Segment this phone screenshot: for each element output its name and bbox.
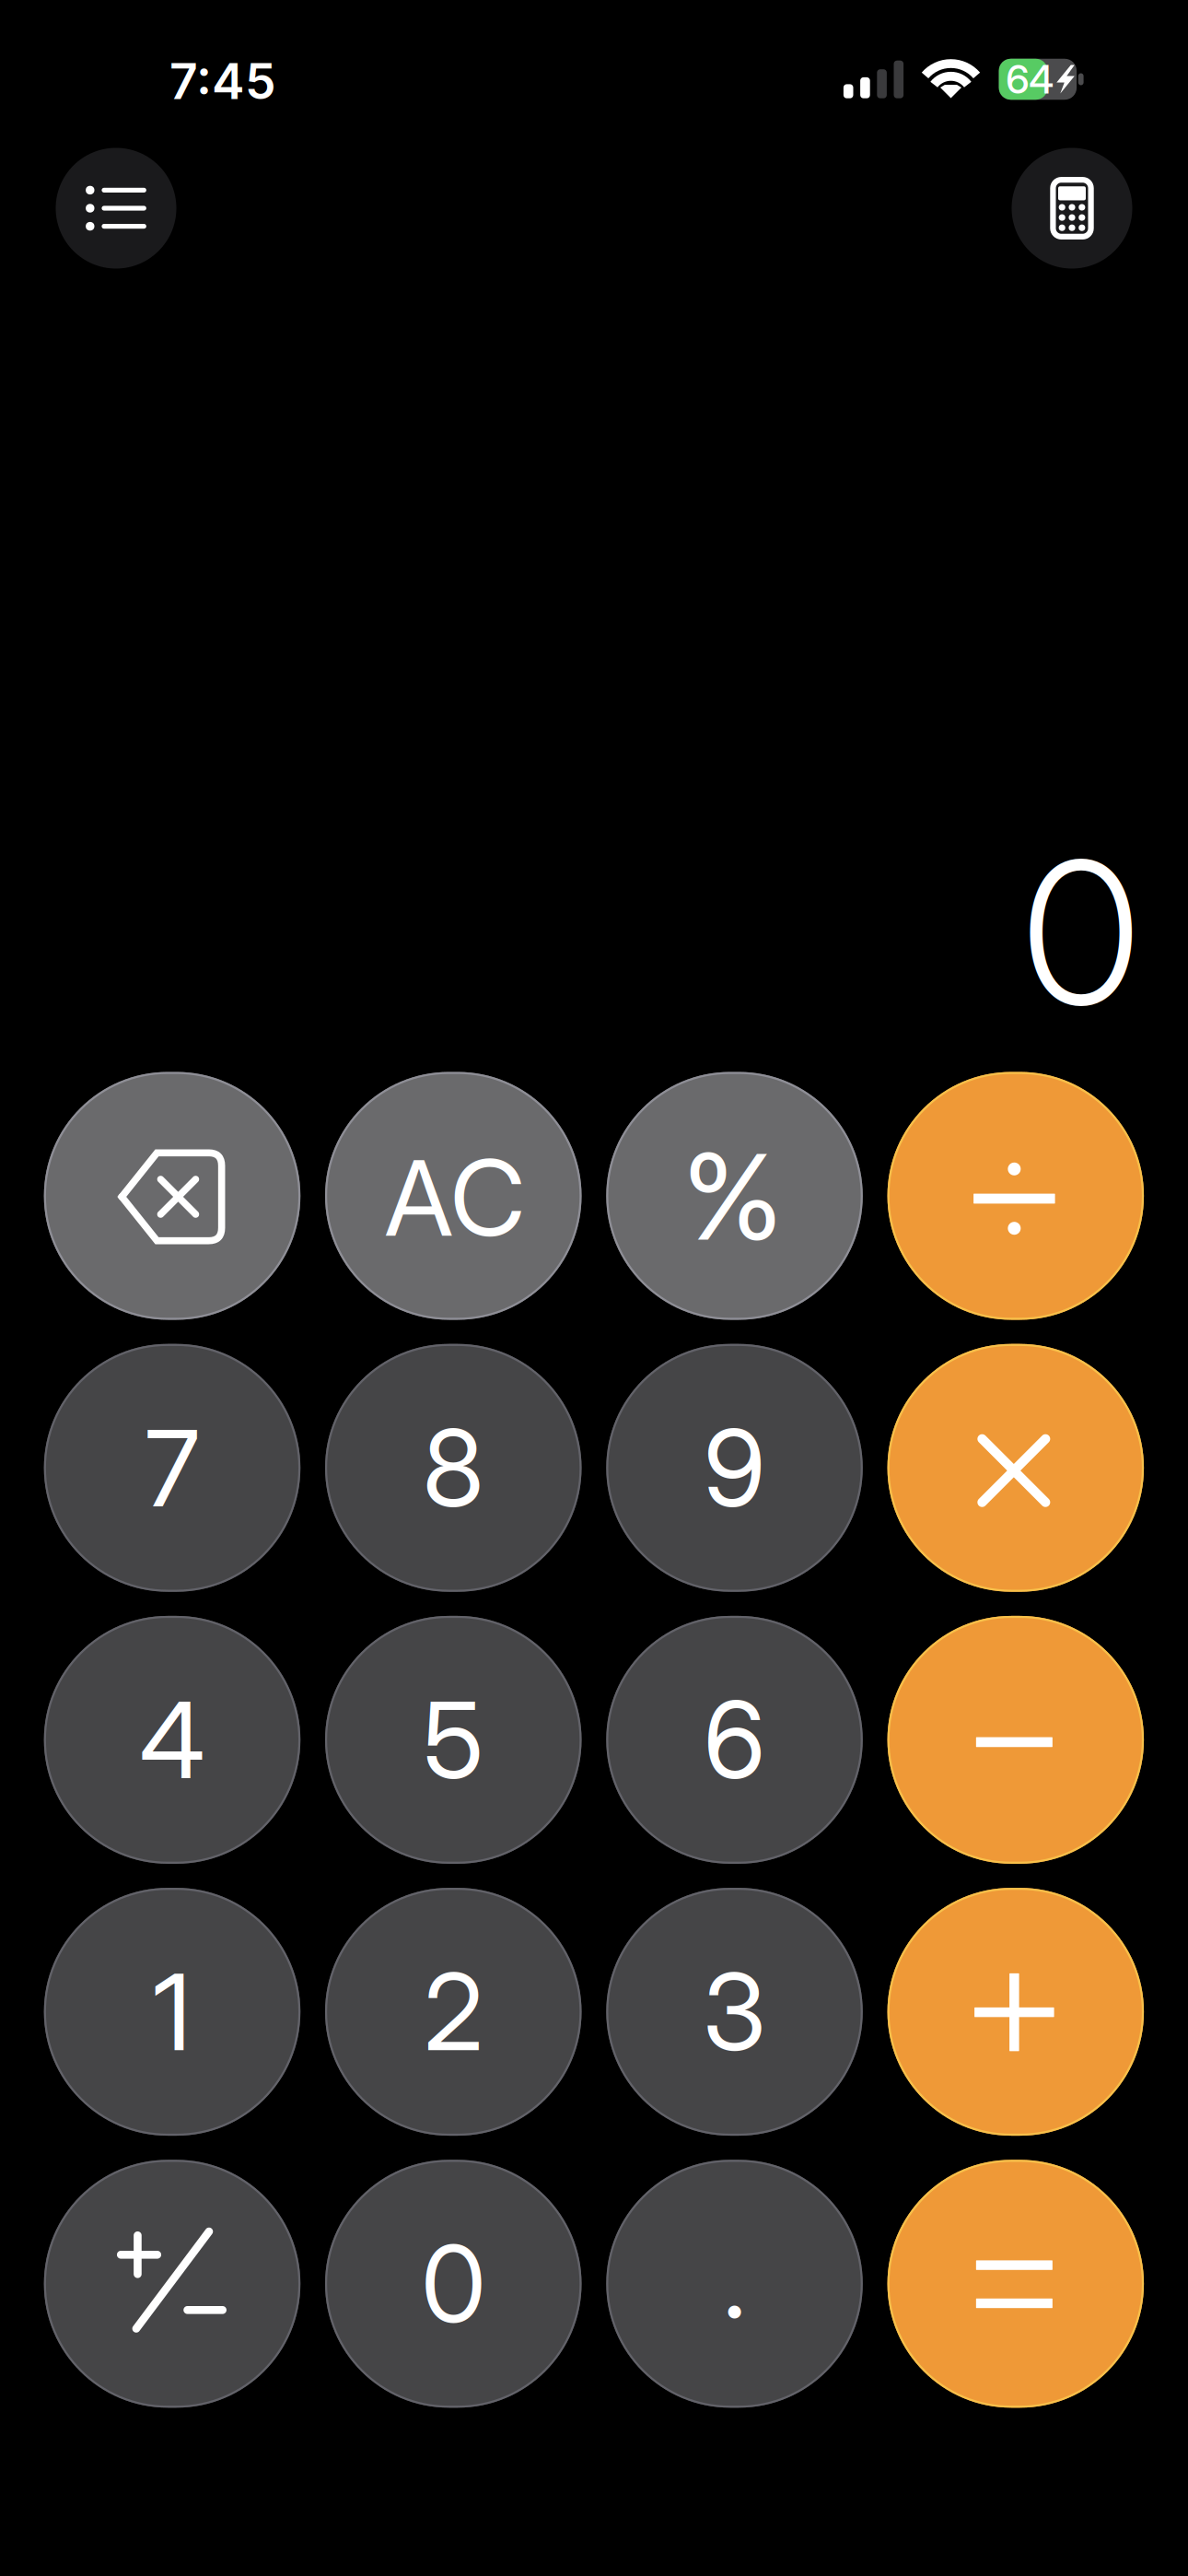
staticText: 5 xyxy=(423,1676,484,1804)
staticText: 3 xyxy=(703,1948,766,2076)
button[interactable]: 5 xyxy=(325,1616,582,1864)
staticText: 1 xyxy=(153,1948,191,2076)
staticText: . xyxy=(723,2215,746,2343)
button[interactable]: 4 xyxy=(44,1616,300,1864)
staticText: AC xyxy=(385,1135,526,1261)
button[interactable]: Multiply xyxy=(887,1344,1144,1592)
button[interactable]: Switch calculator xyxy=(1012,148,1132,269)
button[interactable]: 6 xyxy=(606,1616,863,1864)
staticText: 7 xyxy=(145,1404,199,1532)
button[interactable]: % xyxy=(606,1072,863,1320)
button[interactable]: Divide xyxy=(887,1072,1144,1320)
button[interactable]: 0 xyxy=(325,2160,582,2408)
staticText: % xyxy=(683,1125,782,1268)
button[interactable]: Plus or minus xyxy=(44,2160,300,2408)
staticText: 4 xyxy=(139,1676,205,1804)
staticText: 0 xyxy=(1022,813,1140,1052)
staticText: 8 xyxy=(423,1404,484,1532)
staticText: 2 xyxy=(424,1948,483,2076)
button[interactable]: History xyxy=(56,148,176,269)
button[interactable]: AC xyxy=(325,1072,582,1320)
staticText: 0 xyxy=(421,2220,486,2348)
staticText: 64 xyxy=(1006,55,1054,103)
button[interactable]: . xyxy=(606,2160,863,2408)
staticText: 9 xyxy=(704,1404,765,1532)
staticText: 7:45 xyxy=(169,51,276,111)
button[interactable]: Minus xyxy=(887,1616,1144,1864)
staticText: 6 xyxy=(704,1676,765,1804)
button[interactable]: 1 xyxy=(44,1888,300,2136)
button[interactable]: Backspace xyxy=(44,1072,300,1320)
button[interactable]: Plus xyxy=(887,1888,1144,2136)
button[interactable]: 7 xyxy=(44,1344,300,1592)
button[interactable]: Equals xyxy=(887,2160,1144,2408)
button[interactable]: 2 xyxy=(325,1888,582,2136)
button[interactable]: 3 xyxy=(606,1888,863,2136)
button[interactable]: 9 xyxy=(606,1344,863,1592)
button[interactable]: 8 xyxy=(325,1344,582,1592)
